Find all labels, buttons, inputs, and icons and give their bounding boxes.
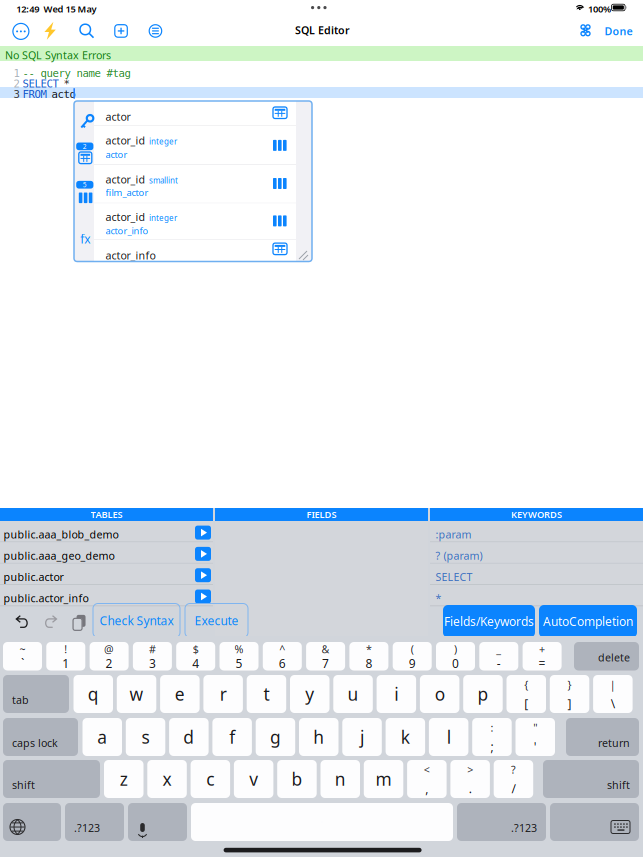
button[interactable]: Change keyboard <box>3 803 61 841</box>
button[interactable]: ~ <box>3 642 42 670</box>
button[interactable]: j <box>342 718 382 756</box>
button[interactable]: n <box>320 760 360 798</box>
button[interactable]: q <box>73 675 113 713</box>
staticText: 2 <box>13 78 19 90</box>
button[interactable]: Dictate <box>128 803 187 841</box>
button[interactable]: g <box>256 718 295 756</box>
button[interactable]: SELECT <box>430 564 643 584</box>
staticText: actor_id <box>106 133 146 148</box>
button[interactable]: o <box>420 675 459 713</box>
button[interactable]: z <box>104 760 143 798</box>
button[interactable]: Undo <box>16 616 28 628</box>
button[interactable]: t <box>247 675 286 713</box>
staticText: fx <box>80 231 90 247</box>
button[interactable]: :param <box>430 521 643 542</box>
button[interactable]: l <box>429 718 468 756</box>
button[interactable]: r <box>203 675 243 713</box>
staticText: / <box>511 780 515 796</box>
button[interactable]: actor_info <box>94 240 296 261</box>
button[interactable]: New query <box>115 25 127 37</box>
staticText: ) <box>454 642 457 656</box>
button[interactable]: < <box>407 760 447 798</box>
button[interactable]: x <box>147 760 187 798</box>
staticText: u <box>347 682 358 705</box>
staticText: 1 <box>13 67 19 80</box>
button[interactable]: > <box>450 760 490 798</box>
button[interactable]: tab <box>3 675 69 713</box>
button[interactable]: : <box>472 718 512 756</box>
button[interactable]: Execute <box>185 603 248 637</box>
button[interactable]: d <box>169 718 209 756</box>
button[interactable]: ^ <box>263 642 302 670</box>
staticText: x <box>163 767 172 790</box>
button[interactable]: * <box>349 642 388 670</box>
button[interactable]: & <box>306 642 345 670</box>
button[interactable]: public.aaa_blob_demo <box>0 521 213 542</box>
button[interactable]: p <box>463 675 503 713</box>
button[interactable]: ) <box>436 642 475 670</box>
button[interactable]: } <box>550 675 589 713</box>
button[interactable]: caps lock <box>3 718 78 756</box>
button[interactable]: a <box>82 718 122 756</box>
button[interactable]: ? <box>494 760 533 798</box>
button[interactable]: Done <box>604 24 632 38</box>
button[interactable]: Schema <box>580 24 590 36</box>
button[interactable]: c <box>191 760 230 798</box>
button[interactable]: b <box>277 760 317 798</box>
button[interactable]: ? (param) <box>430 542 643 563</box>
staticText: [ <box>524 695 528 711</box>
button[interactable]: w <box>117 675 156 713</box>
button[interactable]: Run query <box>43 22 57 40</box>
button[interactable]: h <box>299 718 338 756</box>
button[interactable]: actor_id <box>94 126 296 164</box>
button[interactable]: Redo <box>44 616 57 628</box>
button[interactable]: m <box>364 760 403 798</box>
button[interactable]: % <box>219 642 258 670</box>
button[interactable]: .?123 <box>457 803 546 841</box>
staticText: d <box>183 725 194 748</box>
button[interactable]: shift <box>3 760 100 798</box>
button[interactable]: i <box>377 675 416 713</box>
button[interactable]: Query list <box>149 25 162 37</box>
button[interactable]: actor <box>94 101 296 125</box>
button[interactable]: .?123 <box>65 803 124 841</box>
button[interactable]: Check Syntax <box>93 603 180 637</box>
button[interactable]: return <box>566 718 639 756</box>
staticText: n <box>335 767 346 790</box>
button[interactable]: + <box>523 642 562 670</box>
button[interactable]: s <box>126 718 165 756</box>
staticText: ! <box>64 642 67 656</box>
button[interactable]: ! <box>46 642 85 670</box>
button[interactable]: shift <box>543 760 639 798</box>
button[interactable]: Paste <box>71 613 84 629</box>
button[interactable]: { <box>506 675 546 713</box>
staticText: ( <box>411 642 414 656</box>
button[interactable]: @ <box>90 642 129 670</box>
button[interactable]: * <box>430 585 643 605</box>
button[interactable]: Hide keyboard <box>550 803 639 841</box>
button[interactable]: f <box>212 718 252 756</box>
button[interactable]: " <box>515 718 555 756</box>
button[interactable]: v <box>234 760 273 798</box>
button[interactable]: AutoCompletion <box>539 605 637 637</box>
button[interactable]: e <box>160 675 200 713</box>
button[interactable]: $ <box>176 642 215 670</box>
button[interactable]: public.actor_info <box>0 585 213 605</box>
button[interactable]: actor_id <box>94 165 296 203</box>
staticText: .?123 <box>74 821 100 835</box>
button[interactable]: k <box>386 718 425 756</box>
button[interactable]: y <box>290 675 329 713</box>
button[interactable]: ( <box>393 642 432 670</box>
button[interactable]: # <box>133 642 172 670</box>
button[interactable]: public.aaa_geo_demo <box>0 542 213 563</box>
button[interactable]: Search <box>79 24 94 39</box>
button[interactable]: delete <box>574 642 639 670</box>
button[interactable]: u <box>333 675 373 713</box>
button[interactable]: public.actor <box>0 564 213 584</box>
button[interactable]: Fields/Keywords <box>443 605 535 637</box>
button[interactable]: _ <box>479 642 518 670</box>
button[interactable]: More <box>13 23 29 39</box>
button[interactable]: | <box>593 675 633 713</box>
button[interactable]: actor_id <box>94 203 296 239</box>
